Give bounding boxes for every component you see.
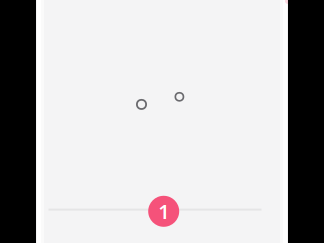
button[interactable]: 1: [148, 196, 179, 227]
staticText: 1: [158, 198, 169, 225]
